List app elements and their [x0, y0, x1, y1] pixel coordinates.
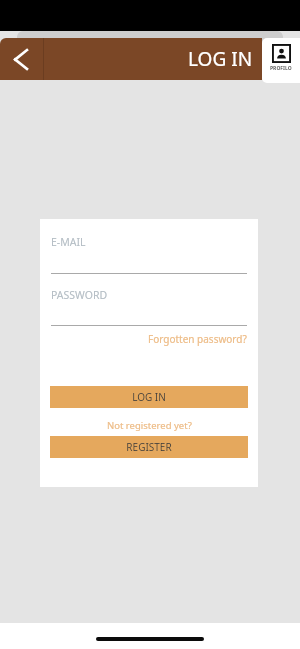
staticText: E-MAIL — [51, 235, 86, 249]
staticText: PASSWORD — [51, 288, 108, 302]
button[interactable]: E-MAIL — [51, 235, 247, 274]
button[interactable]: LOG IN — [50, 386, 248, 408]
staticText: REGISTER — [126, 440, 172, 454]
button[interactable]: REGISTER — [50, 436, 248, 458]
staticText: LOG IN — [132, 390, 166, 404]
button[interactable]: Forgotten password? — [148, 330, 258, 348]
button[interactable]: Back — [0, 38, 43, 80]
button[interactable]: PASSWORD — [51, 288, 247, 326]
button[interactable]: Not registered yet? — [103, 418, 196, 433]
staticText: Forgotten password? — [148, 332, 247, 346]
staticText: PROFILO — [270, 65, 292, 72]
staticText: Not registered yet? — [107, 419, 192, 432]
staticText: LOG IN — [188, 46, 253, 72]
button[interactable]: Profilo — [262, 38, 300, 83]
